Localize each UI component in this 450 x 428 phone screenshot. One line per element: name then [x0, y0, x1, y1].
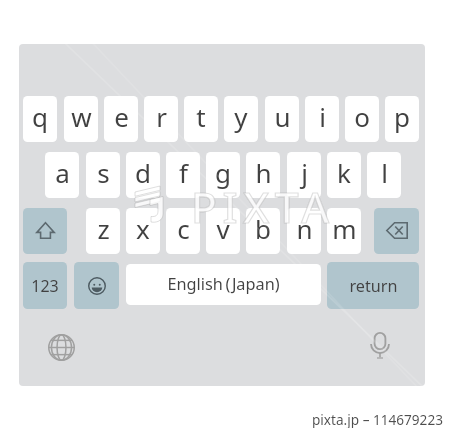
button[interactable]: b — [246, 208, 280, 254]
button[interactable]: j — [287, 152, 321, 198]
button[interactable]: q — [23, 96, 57, 142]
button[interactable]: Voice input — [370, 332, 390, 359]
staticText: l — [381, 155, 388, 190]
button[interactable]: 123 — [23, 262, 67, 309]
staticText: PIXTA — [191, 178, 335, 236]
button[interactable]: o — [345, 96, 379, 142]
button[interactable]: t — [184, 96, 218, 142]
button[interactable]: g — [206, 152, 240, 198]
button[interactable]: k — [327, 152, 361, 198]
button[interactable]: z — [86, 208, 120, 254]
button[interactable]: return — [327, 262, 419, 309]
staticText: z — [97, 211, 110, 246]
staticText: k — [337, 155, 351, 190]
button[interactable]: w — [64, 96, 98, 142]
staticText: f — [179, 155, 188, 190]
staticText: m — [332, 211, 357, 246]
staticText: r — [156, 99, 167, 134]
staticText: t — [196, 99, 206, 134]
staticText: e — [114, 99, 129, 134]
button[interactable]: d — [126, 152, 160, 198]
staticText: o — [354, 99, 370, 134]
staticText: y — [234, 99, 248, 134]
button[interactable]: s — [86, 152, 120, 198]
staticText: p — [394, 99, 410, 134]
staticText: a — [55, 155, 70, 190]
button[interactable]: a — [45, 152, 79, 198]
staticText: h — [255, 155, 272, 190]
staticText: c — [177, 211, 190, 246]
staticText: s — [97, 155, 110, 190]
staticText: 123 — [31, 275, 59, 297]
button[interactable]: v — [206, 208, 240, 254]
button[interactable]: h — [246, 152, 280, 198]
staticText: b — [255, 211, 271, 246]
button[interactable]: c — [166, 208, 200, 254]
button[interactable]: f — [166, 152, 200, 198]
staticText: d — [135, 155, 151, 190]
button[interactable]: p — [385, 96, 419, 142]
button[interactable]: Emoji — [74, 262, 119, 309]
button[interactable]: l — [367, 152, 401, 198]
button[interactable]: n — [287, 208, 321, 254]
button[interactable]: u — [265, 96, 299, 142]
button[interactable]: m — [327, 208, 361, 254]
staticText: q — [32, 99, 48, 134]
button[interactable]: Shift — [23, 208, 67, 254]
staticText: x — [136, 211, 150, 246]
staticText: i — [319, 99, 326, 134]
staticText: PIXTA — [191, 178, 335, 236]
staticText: return — [349, 275, 398, 297]
staticText: v — [216, 211, 230, 246]
staticText: g — [215, 155, 231, 190]
button[interactable]: e — [104, 96, 138, 142]
button[interactable]: r — [144, 96, 178, 142]
staticText: w — [71, 99, 92, 134]
button[interactable]: Backspace — [374, 208, 419, 254]
button[interactable]: Change language — [48, 334, 75, 361]
staticText: English (Japan) — [167, 273, 280, 295]
staticText: pixta.jp – 114679223 — [312, 410, 443, 428]
button[interactable]: i — [305, 96, 339, 142]
button[interactable]: y — [224, 96, 258, 142]
button[interactable]: English (Japan) — [126, 264, 321, 305]
staticText: u — [274, 99, 291, 134]
button[interactable]: x — [126, 208, 160, 254]
staticText: n — [296, 211, 313, 246]
staticText: j — [301, 155, 308, 190]
